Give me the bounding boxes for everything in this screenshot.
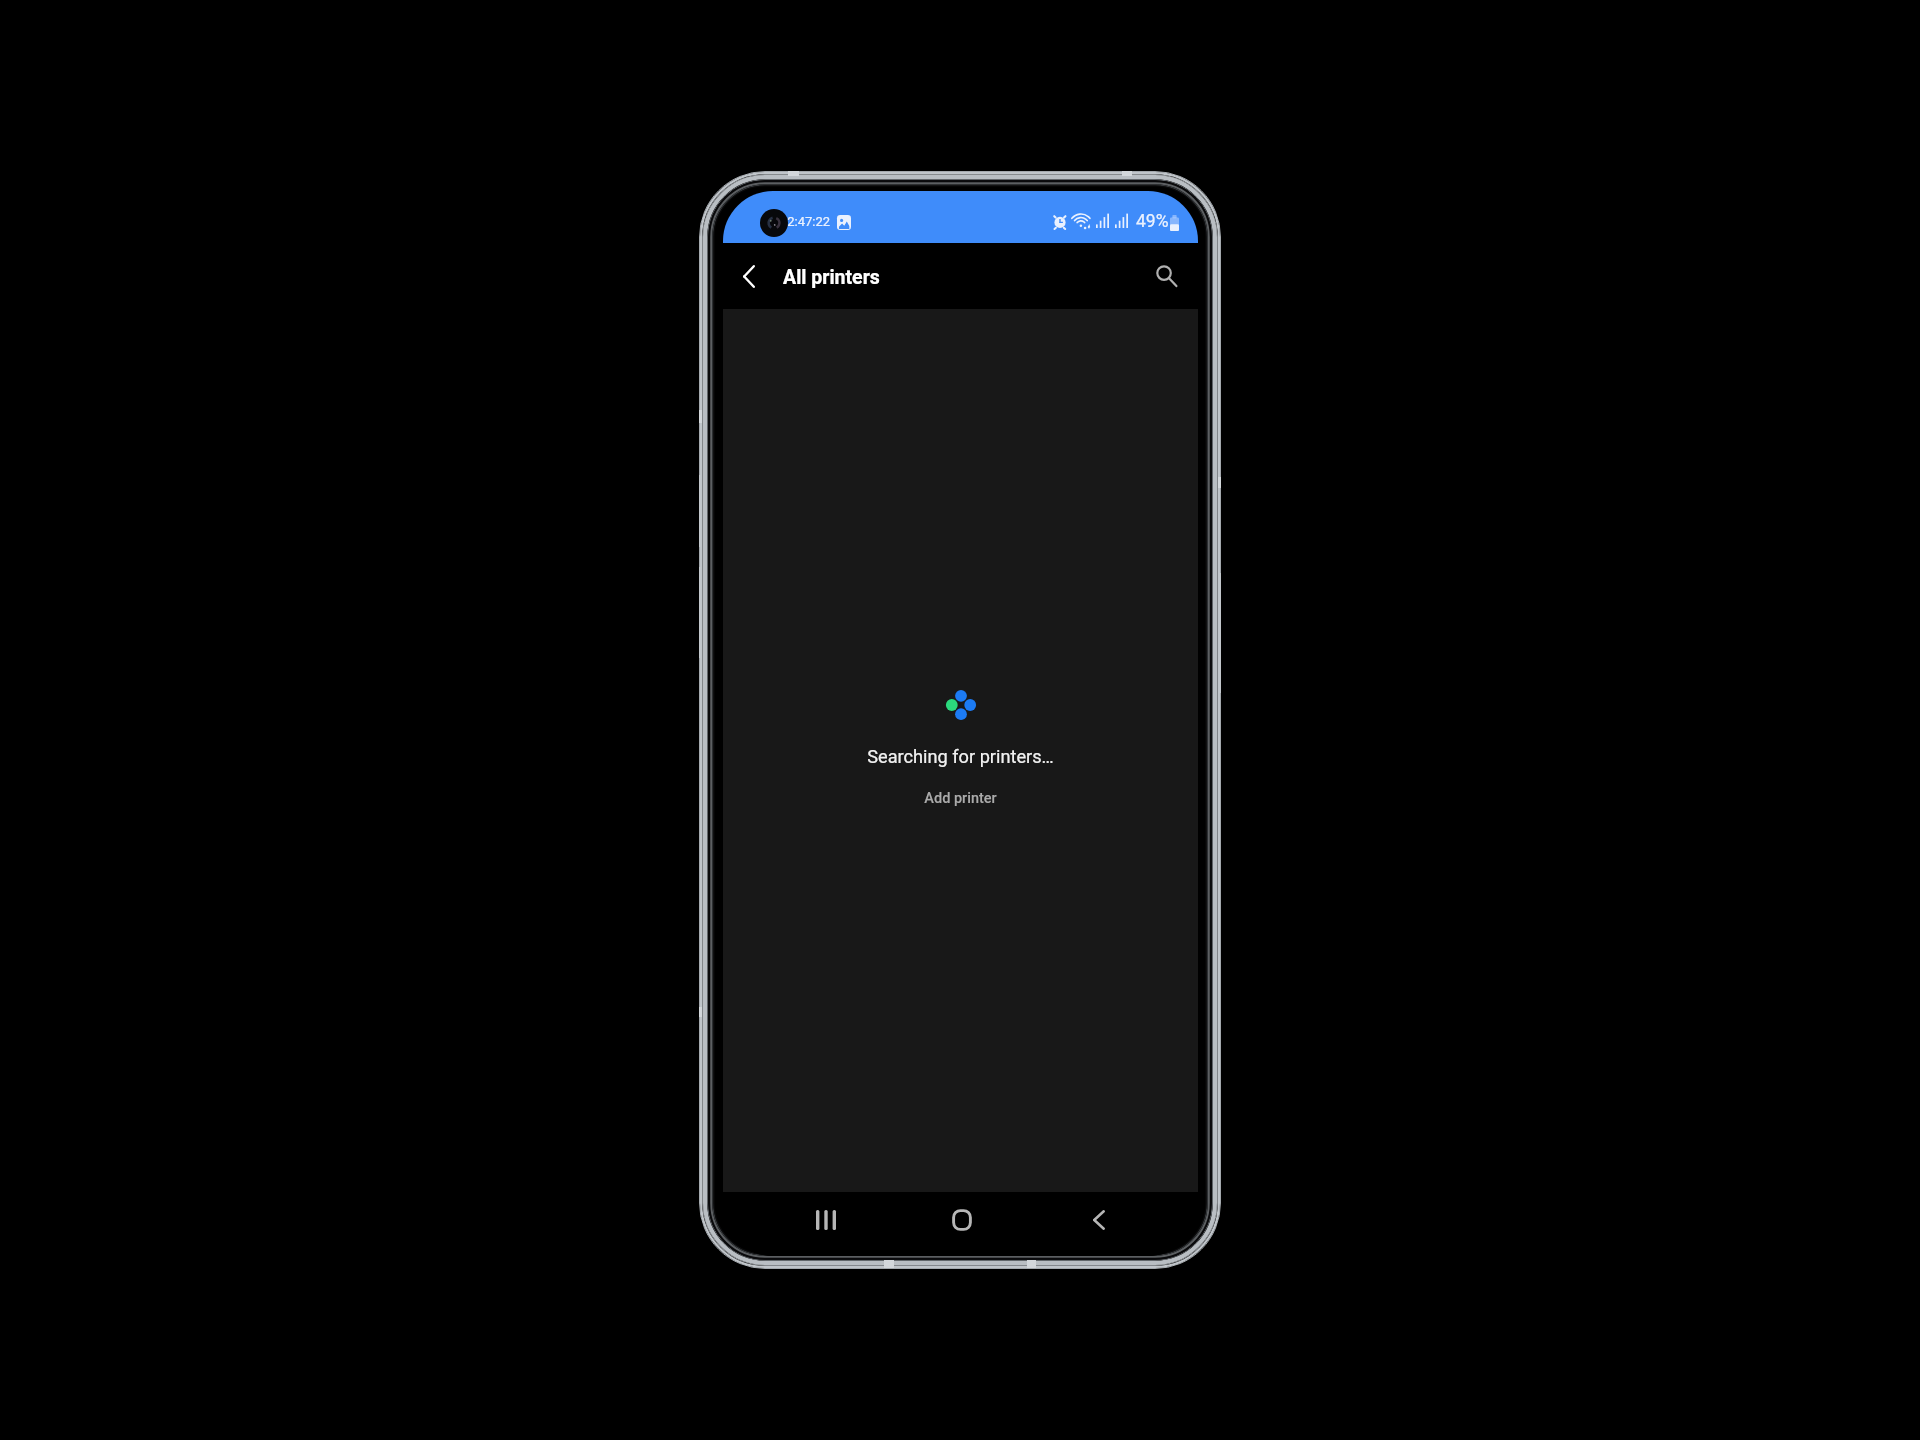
- staticText: Searching for printers…: [867, 746, 1054, 767]
- button[interactable]: Navigate up: [727, 254, 771, 298]
- button[interactable]: Home: [936, 1194, 988, 1246]
- button[interactable]: Search: [1142, 251, 1186, 295]
- staticText: 49%: [1136, 211, 1169, 232]
- staticText: 12:47:22: [780, 214, 831, 229]
- button[interactable]: Add printer: [912, 784, 1009, 813]
- button[interactable]: Back: [1073, 1194, 1125, 1246]
- staticText: All printers: [783, 266, 880, 289]
- staticText: Add printer: [924, 790, 997, 807]
- button[interactable]: Recent apps: [800, 1194, 852, 1246]
